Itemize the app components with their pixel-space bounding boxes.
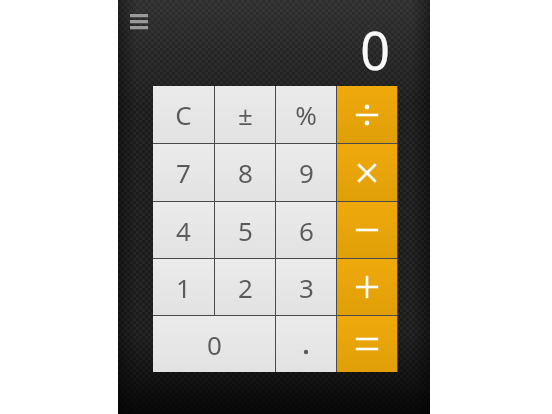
staticText: C xyxy=(175,97,192,132)
button[interactable]: + xyxy=(337,259,397,315)
button[interactable]: 2 xyxy=(215,259,275,315)
button[interactable]: − xyxy=(337,202,397,258)
staticText: 9 xyxy=(299,155,314,190)
button[interactable]: = xyxy=(337,316,397,372)
staticText: 4 xyxy=(176,213,191,248)
staticText: ± xyxy=(238,97,253,132)
button[interactable]: 6 xyxy=(276,202,336,258)
button[interactable]: Menu xyxy=(124,6,158,36)
button[interactable]: 0 xyxy=(153,316,275,372)
button[interactable]: × xyxy=(337,144,397,201)
staticText: % xyxy=(295,97,317,132)
button[interactable]: 3 xyxy=(276,259,336,315)
staticText: 3 xyxy=(299,270,314,305)
staticText: 5 xyxy=(238,213,253,248)
button[interactable]: 1 xyxy=(153,259,214,315)
button[interactable]: 5 xyxy=(215,202,275,258)
button[interactable]: ± xyxy=(215,86,275,143)
button[interactable]: 4 xyxy=(153,202,214,258)
button[interactable]: . xyxy=(276,316,336,372)
button[interactable]: C xyxy=(153,86,214,143)
button[interactable]: 8 xyxy=(215,144,275,201)
staticText: 2 xyxy=(238,270,253,305)
staticText: 0 xyxy=(207,327,222,362)
staticText: 7 xyxy=(176,155,191,190)
button[interactable]: ÷ xyxy=(337,86,397,143)
staticText: 8 xyxy=(238,155,253,190)
staticText: 1 xyxy=(176,270,191,305)
button[interactable]: % xyxy=(276,86,336,143)
button[interactable]: 7 xyxy=(153,144,214,201)
button[interactable]: 9 xyxy=(276,144,336,201)
staticText: 6 xyxy=(299,213,314,248)
staticText: 0 xyxy=(360,14,390,85)
